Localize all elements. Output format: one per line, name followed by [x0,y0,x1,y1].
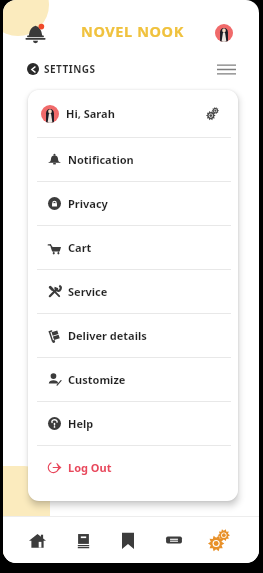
button[interactable]: Help [28,402,238,445]
button[interactable]: Privacy [28,182,238,225]
button[interactable]: Notifications [24,22,46,44]
button[interactable]: Orders [163,529,185,551]
button[interactable]: Log Out [28,446,238,489]
button[interactable]: Menu [216,59,236,79]
staticText: Service [68,284,108,299]
button[interactable]: Deliver details [28,314,238,357]
button[interactable]: Library [72,529,94,551]
staticText: Log Out [68,460,112,475]
staticText: Deliver details [68,328,147,343]
button[interactable]: Bookmarks [117,529,139,551]
staticText: Hi, Sarah [66,106,115,121]
staticText: Help [68,416,94,431]
staticText: SETTINGS [44,62,96,76]
button[interactable]: Home [26,529,48,551]
button[interactable]: Customize [28,358,238,401]
button[interactable]: Account settings [206,107,219,120]
button[interactable]: Notification [28,138,238,181]
staticText: Customize [68,372,126,387]
staticText: Notification [68,152,134,167]
staticText: Privacy [68,196,108,211]
staticText: Cart [68,240,92,255]
button[interactable]: Settings [208,529,230,551]
button[interactable]: SETTINGS [27,62,96,76]
staticText: NOVEL NOOK [81,21,184,41]
button[interactable]: Cart [28,226,238,269]
button[interactable]: Profile [215,24,233,42]
button[interactable]: Hi, Sarah [28,90,238,137]
button[interactable]: Service [28,270,238,313]
